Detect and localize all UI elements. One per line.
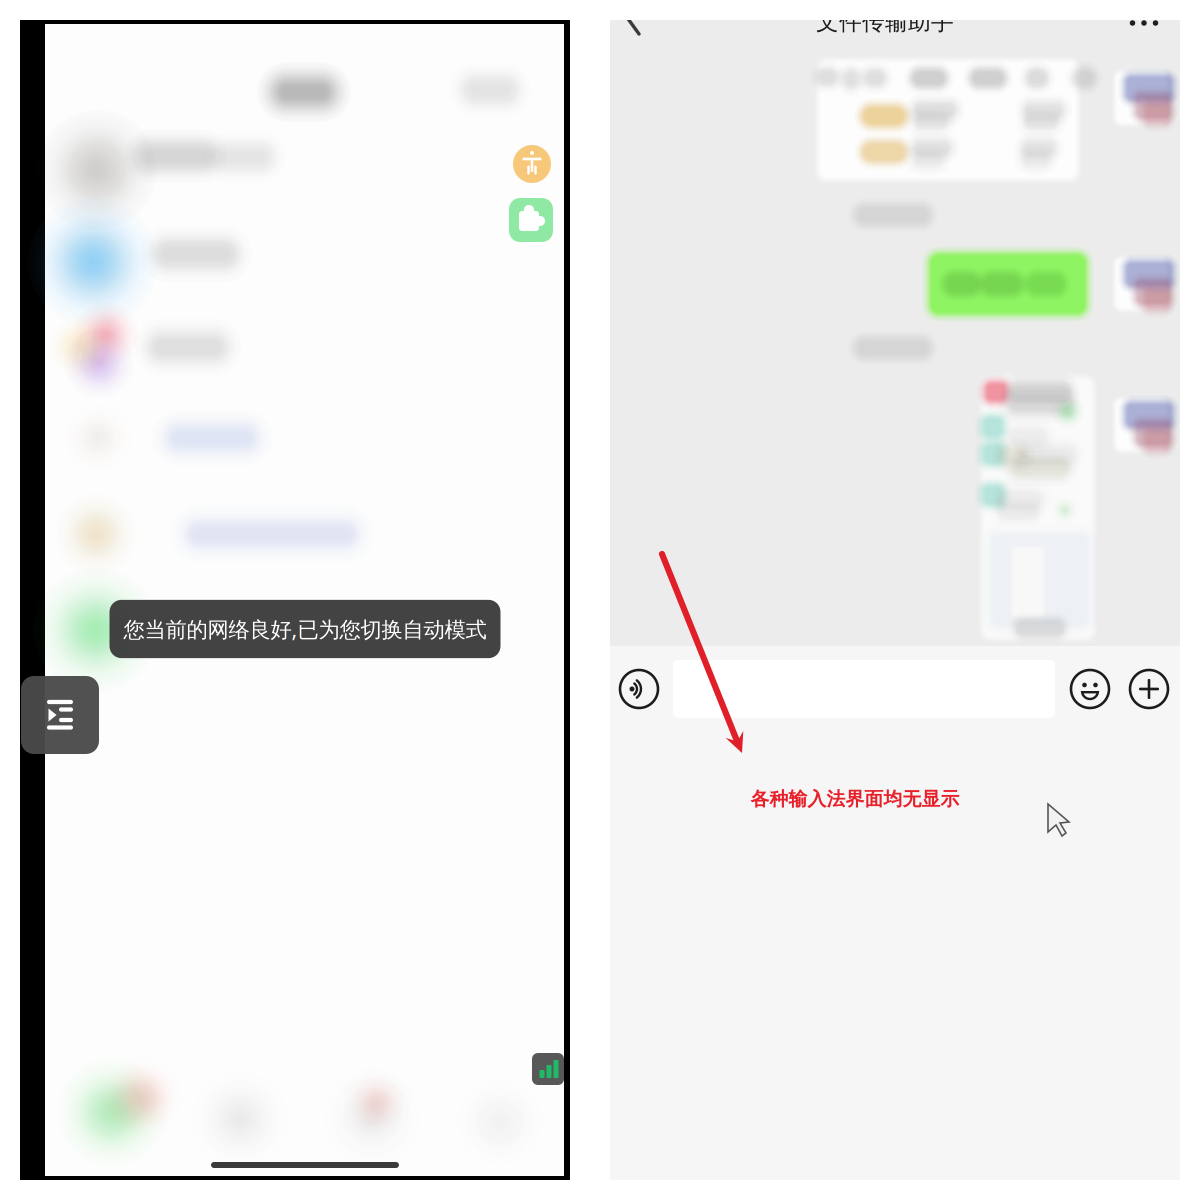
staticText: 文件传输助手 xyxy=(816,8,954,36)
button[interactable]: Emoji xyxy=(1068,667,1112,711)
button[interactable]: Accessibility xyxy=(513,145,551,183)
button[interactable]: Voice message xyxy=(617,667,661,711)
button[interactable]: More xyxy=(1124,8,1164,38)
staticText: 各种输入法界面均无显示 xyxy=(750,787,959,810)
button[interactable]: Extensions xyxy=(509,198,553,242)
button[interactable]: Assistive Touch xyxy=(21,676,99,754)
staticText: 您当前的网络良好,已为您切换自动模式 xyxy=(123,615,486,643)
button[interactable]: More actions xyxy=(1127,667,1171,711)
